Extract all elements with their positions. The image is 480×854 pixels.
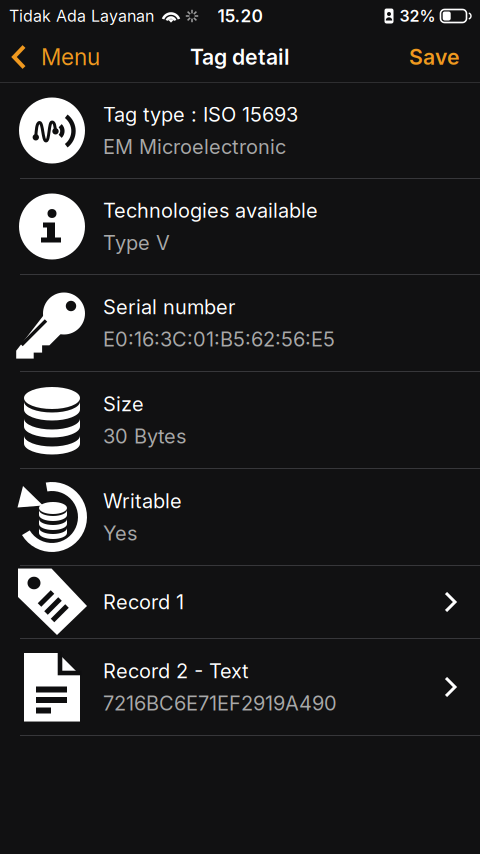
- staticText: Serial number: [103, 295, 235, 319]
- staticText: Tag detail: [190, 44, 290, 70]
- staticText: Record 2 - Text: [103, 659, 249, 683]
- button[interactable]: Size: [0, 372, 480, 468]
- staticText: 30 Bytes: [103, 424, 186, 448]
- staticText: Technologies available: [103, 198, 318, 222]
- button[interactable]: Technologies available: [0, 179, 480, 274]
- staticText: Tidak Ada Layanan: [9, 6, 154, 26]
- staticText: Menu: [41, 43, 100, 71]
- button[interactable]: Record 1: [0, 566, 480, 638]
- button[interactable]: Writable: [0, 469, 480, 565]
- staticText: 15.20: [217, 5, 262, 26]
- staticText: Type V: [103, 230, 170, 255]
- staticText: 32%: [399, 6, 435, 26]
- staticText: Tag type : ISO 15693: [103, 102, 298, 126]
- staticText: Save: [409, 44, 460, 70]
- button[interactable]: Save: [409, 44, 480, 70]
- staticText: Yes: [103, 521, 137, 545]
- staticText: EM Microelectronic: [103, 134, 286, 159]
- staticText: Record 1: [103, 590, 184, 614]
- staticText: Size: [103, 392, 144, 416]
- staticText: 7216BC6E71EF2919A490: [103, 691, 337, 715]
- staticText: Writable: [103, 489, 182, 513]
- button[interactable]: Record 2 - Text: [0, 639, 480, 735]
- button[interactable]: Menu: [0, 43, 100, 71]
- button[interactable]: Tag type : ISO 15693: [0, 83, 480, 178]
- staticText: E0:16:3C:01:B5:62:56:E5: [103, 327, 335, 351]
- button[interactable]: Serial number: [0, 275, 480, 371]
